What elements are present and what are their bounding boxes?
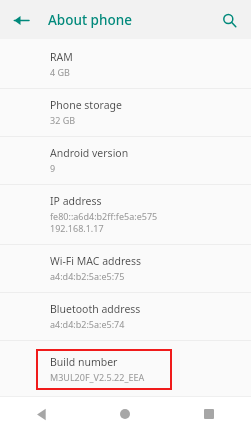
staticText: fe80::a6d4:b2ff:fe5a:e575 [50,210,158,222]
staticText: M3UL20F_V2.5.22_EEA [50,371,145,383]
button[interactable]: Phone storage [0,89,251,136]
staticText: a4:d4:b2:5a:e5:74 [50,318,125,330]
staticText: 192.168.1.17 [50,222,104,234]
button[interactable]: Android version [0,137,251,184]
button[interactable]: Build number [36,349,172,390]
button[interactable]: IP address [0,185,251,244]
button[interactable]: Home [83,396,167,432]
staticText: Android version [50,146,129,160]
button[interactable]: Recent apps [167,396,251,432]
button[interactable]: Bluetooth address [0,293,251,340]
staticText: a4:d4:b2:5a:e5:75 [50,270,125,282]
staticText: 9 [50,162,56,174]
staticText: About phone [48,11,132,29]
button[interactable]: Back [7,6,35,34]
staticText: 32 GB [50,114,76,126]
button[interactable]: Back [0,396,83,432]
button[interactable]: Search [215,6,243,34]
button[interactable]: Wi-Fi MAC address [0,245,251,292]
button[interactable]: RAM [0,41,251,88]
staticText: IP address [50,194,102,208]
staticText: 4 GB [50,66,70,78]
staticText: Build number [50,355,118,369]
staticText: Wi-Fi MAC address [50,254,142,268]
staticText: Bluetooth address [50,302,141,316]
staticText: RAM [50,50,73,64]
staticText: Phone storage [50,98,122,112]
